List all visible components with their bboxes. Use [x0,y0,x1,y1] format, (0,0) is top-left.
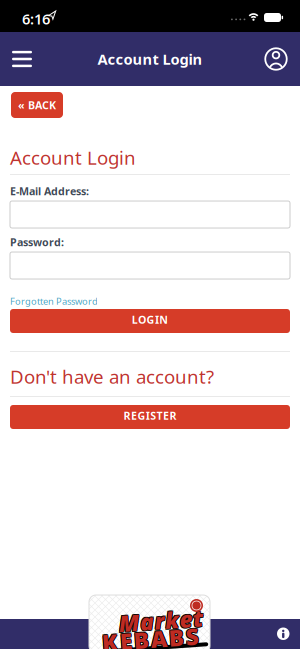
staticText: REGISTER [124,408,176,423]
staticText: KEBABS [102,623,199,649]
staticText: « BACK [18,98,56,112]
button[interactable] [277,627,289,640]
staticText: Forgotten Password [10,295,98,307]
staticText: Market [118,607,203,637]
staticText: Market [120,605,204,635]
staticText: KEBABS [100,625,197,649]
staticText: KEBABS [101,624,198,649]
staticText: Don't have an account? [10,364,214,389]
staticText: E-Mail Address: [10,184,89,198]
staticText: Password: [10,235,64,249]
staticText: LOGIN [132,312,168,327]
staticText: KEBABS [100,623,197,649]
staticText: Market [119,606,203,636]
staticText: 6:16 [22,9,50,28]
button[interactable]: LOGIN [10,309,290,333]
button[interactable]: « BACK [11,92,63,118]
button[interactable] [0,32,44,86]
staticText: Account Login [10,145,136,170]
button[interactable]: REGISTER [10,405,290,429]
button[interactable] [254,32,298,86]
button[interactable]: Forgotten Password [10,295,98,307]
staticText: KEBABS [102,625,199,649]
staticText: Account Login [97,49,202,69]
staticText: Market [120,607,204,637]
staticText: Market [118,605,203,635]
